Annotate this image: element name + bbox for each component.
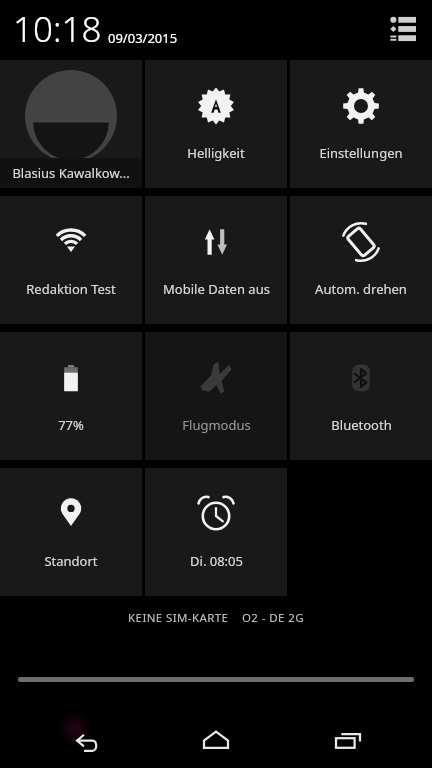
staticText: Helligkeit [187,144,245,162]
button[interactable]: Di. 08:05 [145,468,287,596]
staticText: 09/03/2015 [108,29,178,47]
staticText: Redaktion Test [26,280,116,298]
button[interactable]: Notifications list [386,12,420,46]
staticText: KEINE SIM-KARTE O2 - DE 2G [0,610,432,626]
button[interactable]: 77% [0,332,142,460]
staticText: Di. 08:05 [190,552,243,570]
button[interactable]: Autom. drehen [290,196,432,324]
button[interactable]: Standort [0,468,142,596]
button[interactable]: Redaktion Test [0,196,142,324]
staticText: Blasius Kawalkow... [12,164,130,182]
button[interactable]: Blasius Kawalkow... [0,60,142,188]
staticText: 10:18 [13,5,102,53]
button[interactable]: Bluetooth [290,332,432,460]
staticText: Mobile Daten aus [163,280,270,298]
button[interactable]: Home [168,712,264,768]
button[interactable]: Collapse quick settings [0,668,432,690]
button[interactable]: Helligkeit [145,60,287,188]
staticText: 77% [58,416,84,434]
staticText: Autom. drehen [315,280,407,298]
button[interactable]: Recent apps [300,712,396,768]
button[interactable]: Flugmodus [145,332,287,460]
staticText: Standort [44,552,98,570]
button[interactable]: Back [36,712,132,768]
staticText: Einstellungen [319,144,403,162]
staticText: Bluetooth [331,416,392,434]
button[interactable]: Mobile Daten aus [145,196,287,324]
button[interactable]: Einstellungen [290,60,432,188]
staticText: Flugmodus [182,416,251,434]
